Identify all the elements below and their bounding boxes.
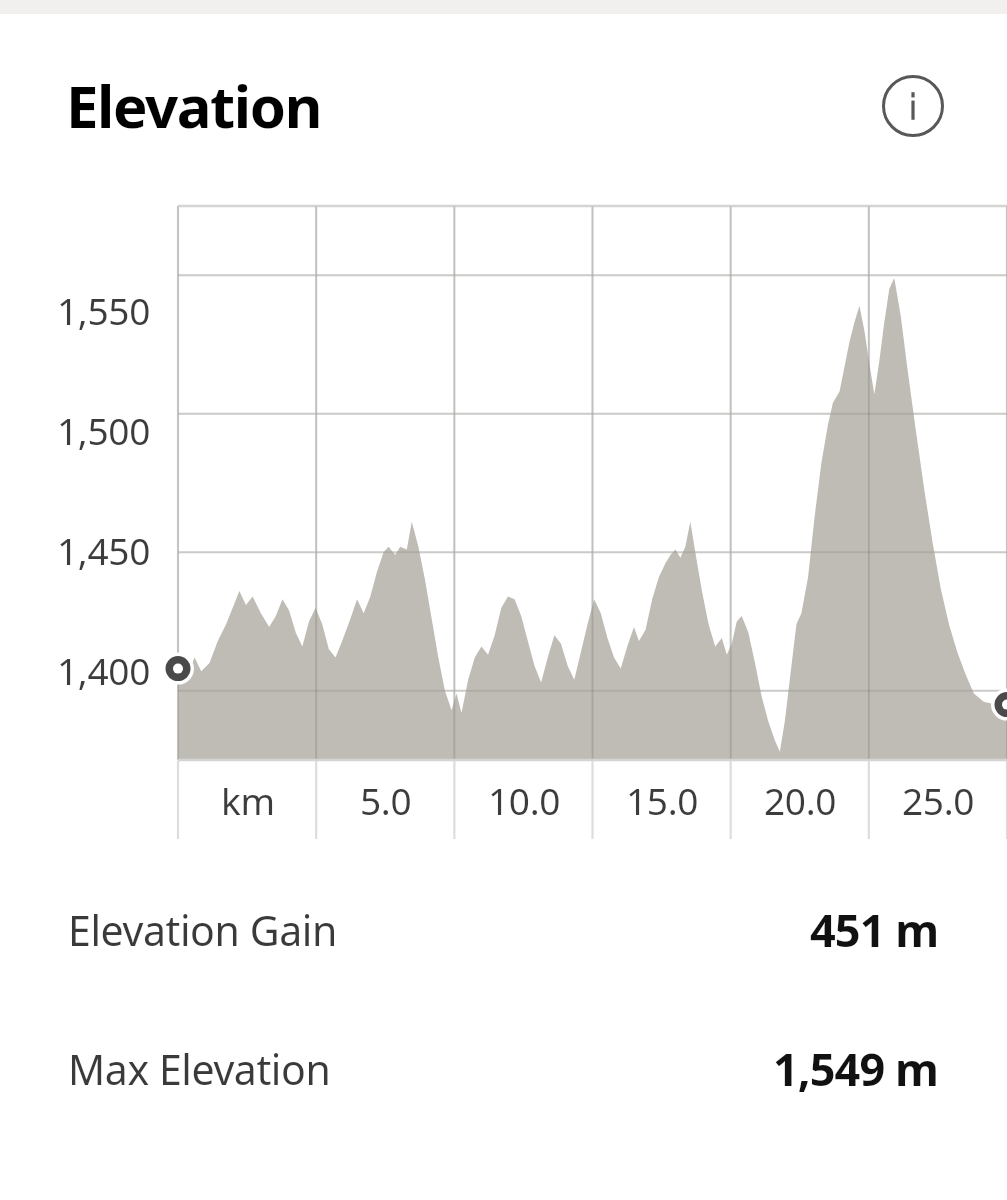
staticText: 20.0: [764, 775, 837, 825]
staticText: 1,549 m: [773, 1038, 939, 1099]
staticText: 5.0: [360, 775, 412, 825]
staticText: 10.0: [488, 775, 561, 825]
staticText: 25.0: [902, 775, 975, 825]
staticText: 15.0: [626, 775, 699, 825]
staticText: Elevation: [66, 66, 321, 145]
staticText: 1,550: [0, 285, 150, 335]
button[interactable]: Max Elevation: [0, 1038, 1007, 1099]
staticText: 1,450: [0, 525, 150, 575]
staticText: 451 m: [810, 899, 939, 960]
button[interactable]: Elevation Gain: [0, 899, 1007, 960]
staticText: Max Elevation: [68, 1041, 331, 1097]
staticText: Elevation Gain: [68, 902, 337, 958]
staticText: 1,400: [0, 645, 150, 695]
staticText: 1,500: [0, 405, 150, 455]
staticText: km: [221, 775, 275, 825]
button[interactable]: Elevation info: [881, 74, 945, 138]
